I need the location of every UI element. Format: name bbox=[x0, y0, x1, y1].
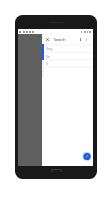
button[interactable]: S bbox=[42, 60, 93, 67]
staticText: Sug bbox=[46, 46, 53, 51]
button[interactable]: Sug bbox=[42, 45, 93, 52]
button[interactable]: Create bbox=[82, 151, 92, 161]
button[interactable]: Home bbox=[51, 169, 62, 172]
button[interactable]: Close search bbox=[46, 38, 49, 41]
staticText: S bbox=[46, 61, 48, 66]
staticText: Se bbox=[46, 54, 50, 59]
button[interactable]: Search bbox=[54, 37, 66, 42]
button[interactable]: Voice search bbox=[79, 38, 82, 41]
button[interactable]: Se bbox=[42, 53, 93, 60]
button[interactable]: More options bbox=[85, 38, 88, 41]
